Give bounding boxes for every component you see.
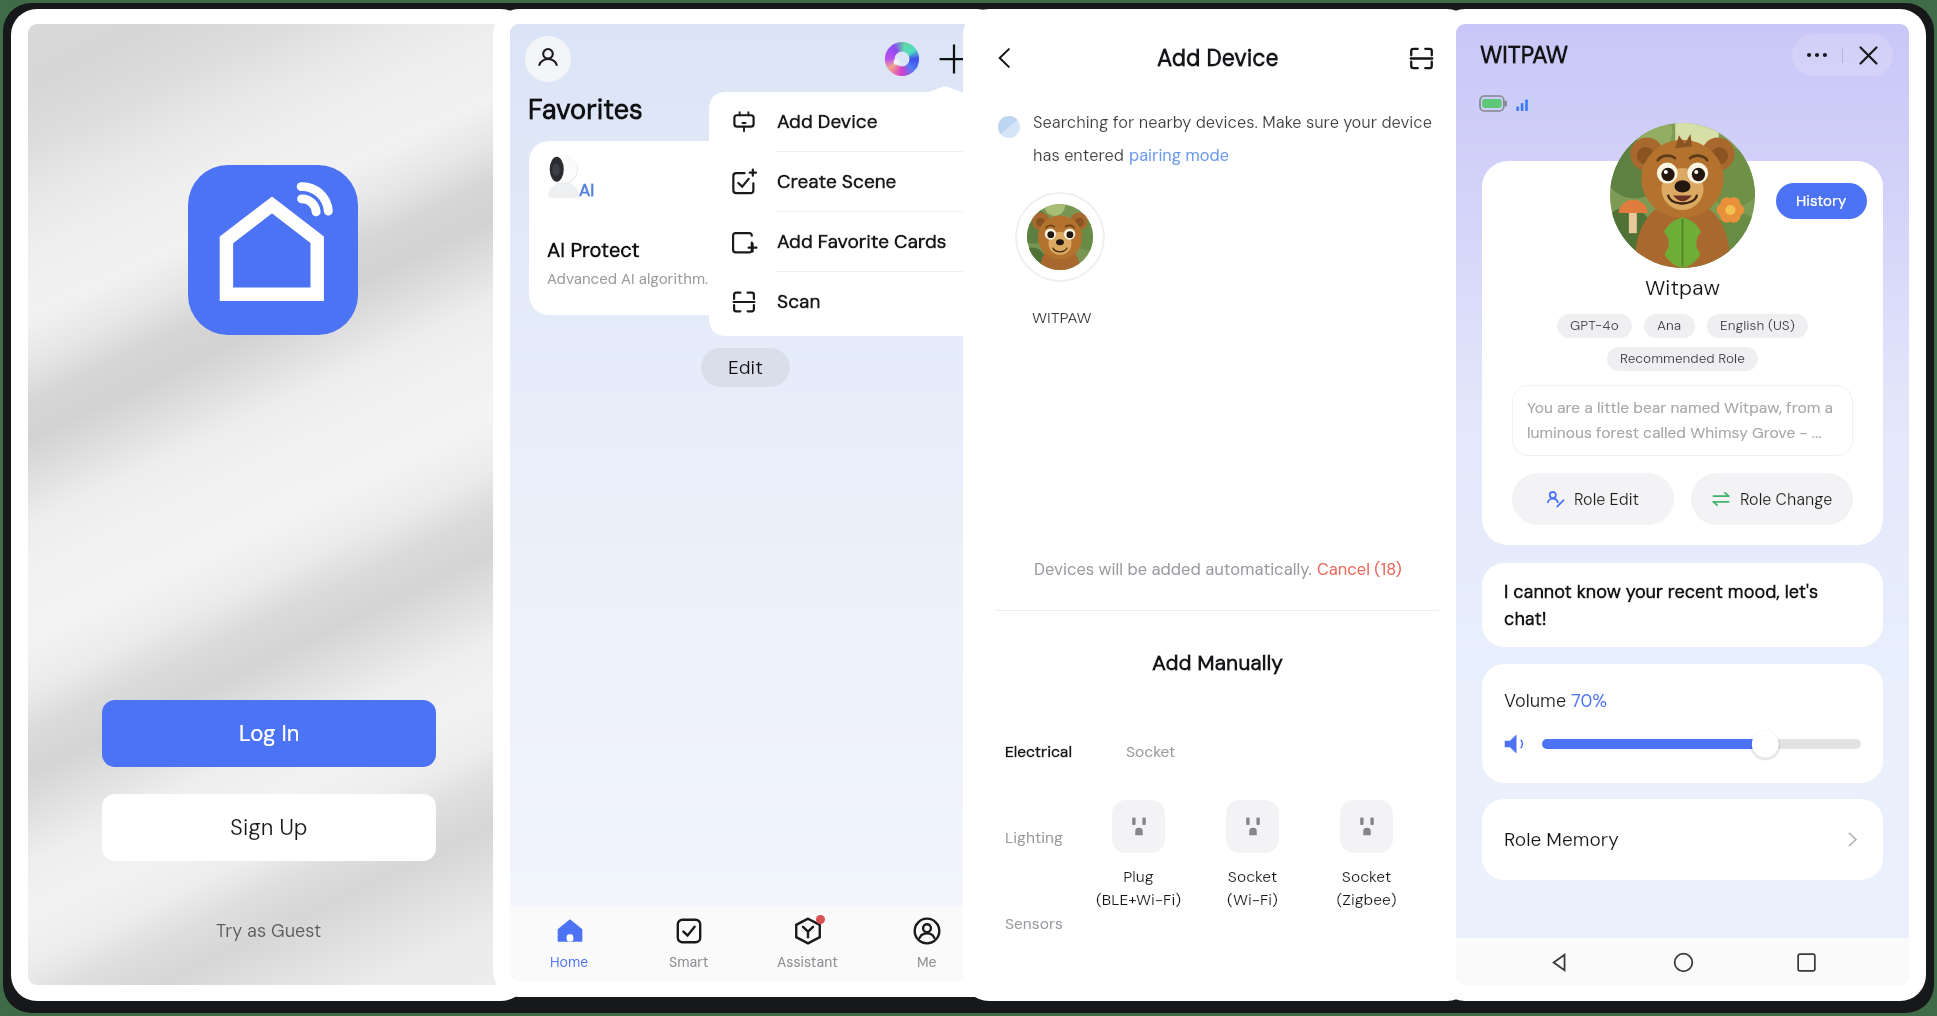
button[interactable]: Create Scene — [709, 152, 986, 211]
staticText: WITPAW — [1480, 40, 1569, 70]
button[interactable]: pairing mode — [1129, 145, 1229, 166]
button[interactable]: Sign Up — [102, 794, 436, 861]
staticText: WITPAW — [1032, 308, 1092, 328]
staticText: Smart — [669, 953, 709, 971]
staticText: AI — [579, 179, 595, 201]
staticText: Lighting — [1005, 828, 1063, 848]
staticText: Sensors — [1005, 914, 1063, 934]
button[interactable]: Add — [936, 41, 972, 77]
staticText: Searching for nearby devices. Make sure … — [1033, 112, 1432, 133]
staticText: Devices will be added automatically. — [1034, 559, 1317, 580]
staticText: Electrical — [1005, 742, 1072, 762]
staticText: Try as Guest — [216, 919, 322, 942]
staticText: Socket (Zigbee) — [1336, 867, 1397, 910]
button[interactable]: Smart Home app — [188, 165, 358, 335]
button[interactable]: Role Memory — [1482, 799, 1883, 880]
staticText: Log In — [239, 719, 300, 748]
button[interactable]: AI Assistant — [884, 41, 920, 77]
button[interactable]: Log In — [102, 700, 436, 767]
staticText: History — [1796, 191, 1847, 211]
button[interactable]: AI — [529, 141, 759, 315]
button[interactable]: Scan — [709, 272, 986, 331]
button[interactable]: Ana — [1644, 314, 1695, 338]
staticText: Me — [917, 953, 937, 971]
staticText: Recommended Role — [1620, 350, 1745, 368]
staticText: Sign Up — [230, 813, 308, 842]
button[interactable]: Add Device — [709, 92, 986, 151]
button[interactable]: Add Favorite Cards — [709, 212, 986, 271]
button[interactable]: Profile — [525, 36, 571, 82]
staticText: Add Device — [1157, 43, 1279, 73]
button[interactable]: Cancel (18) — [1317, 559, 1402, 580]
button[interactable]: Role Change — [1691, 473, 1853, 525]
staticText: Edit — [728, 355, 763, 380]
staticText: Plug (BLE+Wi-Fi) — [1096, 867, 1181, 910]
staticText: Add Manually — [1152, 649, 1284, 676]
button[interactable]: GPT-4o — [1557, 314, 1632, 338]
staticText: GPT-4o — [1570, 317, 1619, 335]
button[interactable]: Recommended Role — [1607, 347, 1758, 371]
staticText: Home — [550, 953, 589, 971]
button[interactable]: Me — [867, 906, 986, 981]
staticText: Advanced AI algorithm.. — [547, 269, 712, 289]
staticText: Role Memory — [1504, 827, 1619, 852]
button[interactable]: Home — [1662, 941, 1704, 983]
button[interactable]: Socket (Zigbee) — [1340, 800, 1393, 910]
staticText: Add Device — [777, 109, 878, 134]
button[interactable]: Assistant — [748, 906, 867, 981]
button[interactable]: Socket (Wi-Fi) — [1226, 800, 1279, 910]
staticText: Socket — [1126, 742, 1176, 762]
button[interactable]: Role Edit — [1512, 473, 1674, 525]
staticText: Add Favorite Cards — [777, 229, 947, 254]
button[interactable]: More options — [1792, 34, 1842, 76]
staticText: Favorites — [528, 92, 643, 127]
staticText: Assistant — [777, 953, 838, 971]
button[interactable]: Home — [510, 906, 629, 981]
staticText: Scan — [777, 289, 821, 314]
staticText: Ana — [1657, 317, 1682, 335]
button[interactable]: Back — [987, 40, 1023, 76]
staticText: English (US) — [1720, 317, 1795, 335]
button[interactable]: Back — [1538, 941, 1580, 983]
staticText: Socket (Wi-Fi) — [1227, 867, 1278, 910]
button[interactable]: Try as Guest — [102, 919, 436, 942]
staticText: Role Change — [1740, 489, 1833, 510]
staticText: AI Protect — [547, 237, 640, 263]
button[interactable]: Smart — [629, 906, 748, 981]
staticText: 70% — [1571, 689, 1608, 712]
staticText: Create Scene — [777, 169, 897, 194]
staticText: Role Edit — [1574, 489, 1640, 510]
staticText: I cannot know your recent mood, let's ch… — [1504, 580, 1861, 630]
button[interactable]: Edit — [701, 348, 790, 387]
button[interactable]: Close — [1843, 34, 1893, 76]
staticText: Witpaw — [1645, 274, 1720, 301]
button[interactable]: History — [1776, 183, 1867, 219]
button[interactable]: Plug (BLE+Wi-Fi) — [1112, 800, 1165, 910]
button[interactable]: Scan QR code — [1403, 40, 1439, 76]
staticText: Volume — [1504, 689, 1571, 712]
button[interactable]: English (US) — [1707, 314, 1808, 338]
button[interactable]: Recent apps — [1785, 941, 1827, 983]
staticText: You are a little bear named Witpaw, from… — [1527, 398, 1838, 443]
button[interactable]: I cannot know your recent mood, let's ch… — [1482, 563, 1883, 647]
button[interactable] — [1015, 192, 1105, 282]
staticText: has entered — [1033, 145, 1129, 166]
